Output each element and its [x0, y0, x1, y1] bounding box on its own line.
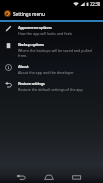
- button[interactable]: About: [0, 61, 103, 78]
- staticText: About: [18, 64, 29, 70]
- button[interactable]: Back: [13, 170, 29, 183]
- button[interactable]: Appearence options: [0, 22, 103, 39]
- staticText: Restore settings: [18, 81, 45, 87]
- staticText: Restore the default settings of the app: [18, 87, 83, 92]
- button[interactable]: Recent apps: [69, 170, 85, 183]
- staticText: 22:38: [90, 1, 101, 7]
- staticText: Appearence options: [18, 25, 52, 31]
- staticText: Settings menu: [13, 11, 45, 17]
- staticText: Backup options: [18, 42, 44, 48]
- button[interactable]: Home: [41, 170, 57, 183]
- staticText: About the app and the developer: [18, 70, 74, 75]
- button[interactable]: Restore settings: [0, 78, 103, 95]
- staticText: How the app will looks and feels: [18, 31, 73, 36]
- staticText: Where the backups will be saved and pull…: [18, 48, 96, 58]
- button[interactable]: Backup options: [0, 39, 103, 61]
